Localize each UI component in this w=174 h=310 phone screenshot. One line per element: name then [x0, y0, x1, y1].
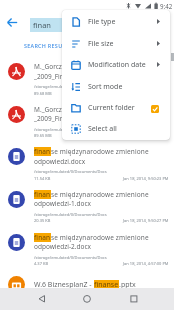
- button[interactable]: File size: [62, 33, 170, 54]
- staticText: 89.65 MB: [34, 133, 52, 138]
- button[interactable]: Modification date: [62, 54, 170, 75]
- button[interactable]: [130, 295, 138, 303]
- staticText: se międzynarodowe zmienione: [51, 147, 149, 156]
- staticText: Current folder: [88, 103, 135, 113]
- staticText: Select all: [88, 124, 117, 134]
- staticText: /storage/emulated/0/Dow: [34, 127, 83, 132]
- staticText: 4.37 KB: [34, 261, 49, 266]
- button[interactable]: File type: [62, 11, 170, 32]
- button[interactable]: [30, 18, 62, 32]
- staticText: 89.68 MB: [34, 91, 52, 96]
- staticText: M._Gorczynska: [34, 105, 80, 114]
- button[interactable]: [83, 295, 91, 303]
- staticText: Jan 18, 2014, 9:50:23 PM: [123, 176, 169, 181]
- button[interactable]: Sort mode: [62, 76, 170, 97]
- staticText: SEARCH RESULTS: [24, 42, 73, 49]
- staticText: finan: [34, 147, 51, 156]
- staticText: se międzynarodowe zmienione: [51, 190, 149, 199]
- staticText: Jan 18, 2014, 4:57:00 PM: [123, 261, 169, 266]
- staticText: /storage/emulated/0/Documents/Docs: [34, 212, 107, 217]
- staticText: /storage/emulated/0/Dow: [34, 84, 83, 89]
- button[interactable]: [8, 276, 25, 293]
- button[interactable]: Select all: [62, 118, 170, 139]
- staticText: 20.35 KB: [34, 218, 51, 223]
- staticText: .pptx: [119, 280, 136, 290]
- staticText: 9:42: [160, 2, 173, 10]
- button[interactable]: [8, 234, 25, 251]
- staticText: _2009_FinanseM: [34, 72, 85, 81]
- staticText: W.6 BiznesplanZ -: [34, 280, 94, 290]
- staticText: /storage/emulated/0/Documents/Docs: [34, 255, 107, 260]
- button[interactable]: [0, 230, 174, 273]
- button[interactable]: [8, 63, 25, 80]
- button[interactable]: [7, 17, 18, 28]
- button[interactable]: Current folder: [62, 97, 170, 118]
- button[interactable]: [38, 295, 46, 303]
- button[interactable]: [0, 60, 174, 103]
- button[interactable]: [0, 188, 174, 231]
- staticText: File size: [88, 39, 114, 49]
- button[interactable]: [0, 145, 174, 188]
- button[interactable]: SEARCH RESULTS: [24, 42, 73, 49]
- staticText: Modification date: [88, 60, 146, 70]
- staticText: Sort mode: [88, 82, 123, 92]
- button[interactable]: [8, 148, 25, 165]
- staticText: Jan 18, 2014, 9:50:27 PM: [123, 218, 169, 223]
- staticText: se międzynarodowe zmienione: [51, 233, 149, 242]
- staticText: odpowiedzi-2.docx: [34, 242, 91, 251]
- button[interactable]: [0, 102, 174, 145]
- staticText: finanse: [94, 280, 119, 290]
- staticText: odpowiedzi-1.docx: [34, 199, 91, 208]
- staticText: odpowiedzi.docx: [34, 157, 86, 166]
- staticText: finan: [33, 20, 51, 30]
- button[interactable]: [0, 272, 174, 288]
- staticText: finan: [34, 233, 51, 242]
- staticText: File type: [88, 17, 116, 27]
- staticText: _2009_FinanseM: [34, 114, 85, 123]
- staticText: /storage/emulated/0/Documents/Docs: [34, 169, 107, 174]
- staticText: finan: [34, 190, 51, 199]
- button[interactable]: [8, 106, 25, 123]
- staticText: M._Gorczynska: [34, 62, 80, 71]
- button[interactable]: [8, 191, 25, 208]
- staticText: 11.54 KB: [34, 176, 51, 181]
